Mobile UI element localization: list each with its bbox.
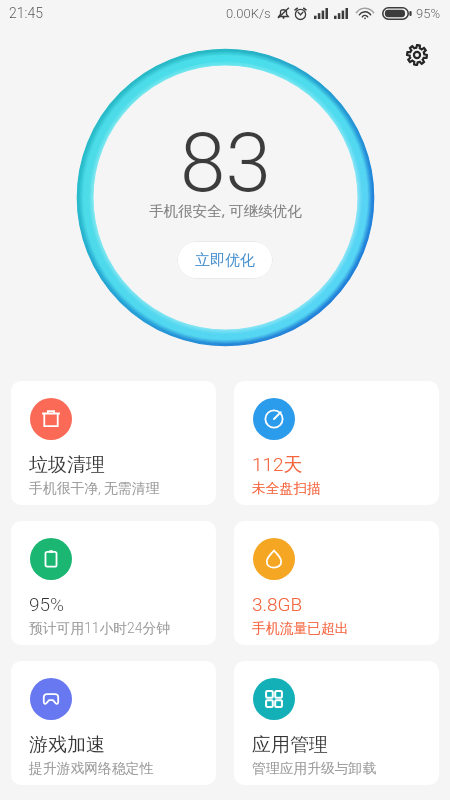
button[interactable]: 游戏加速 (11, 661, 216, 785)
button[interactable]: 112天 (234, 381, 439, 505)
button[interactable]: 应用管理 (234, 661, 439, 785)
staticText: 应用管理 (252, 733, 328, 757)
staticText: 提升游戏网络稳定性 (29, 760, 154, 777)
staticText: 95% (416, 6, 441, 21)
staticText: 手机很干净, 无需清理 (29, 480, 160, 497)
staticText: 预计可用11小时24分钟 (29, 620, 170, 637)
button[interactable]: Settings (394, 32, 440, 78)
staticText: 垃圾清理 (29, 453, 105, 477)
staticText: 0.00K/s (226, 6, 271, 21)
button[interactable]: 3.8GB (234, 521, 439, 645)
staticText: 95% (29, 593, 65, 615)
button[interactable]: 95% (11, 521, 216, 645)
staticText: 管理应用升级与卸载 (252, 760, 377, 777)
button[interactable]: 立即优化 (177, 241, 273, 279)
staticText: 83 (180, 115, 271, 211)
staticText: 立即优化 (195, 251, 255, 270)
staticText: 手机很安全, 可继续优化 (149, 200, 302, 220)
staticText: 手机流量已超出 (252, 620, 349, 637)
staticText: 3.8GB (252, 593, 303, 615)
staticText: 21:45 (9, 5, 44, 21)
staticText: 未全盘扫描 (252, 480, 321, 497)
staticText: 游戏加速 (29, 733, 105, 757)
staticText: 112天 (252, 453, 303, 477)
button[interactable]: 垃圾清理 (11, 381, 216, 505)
